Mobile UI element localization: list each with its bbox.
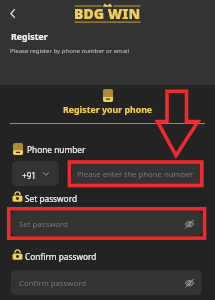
staticText: Register xyxy=(11,31,48,43)
button[interactable]: Show password xyxy=(182,216,197,231)
button[interactable]: Please enter the phone number xyxy=(72,161,201,186)
staticText: +91 xyxy=(22,170,37,181)
button[interactable]: Set password xyxy=(11,211,202,236)
staticText: Phone number xyxy=(27,144,86,155)
button[interactable]: Back xyxy=(0,1,24,25)
staticText: Please register by phone number or email xyxy=(10,47,130,55)
staticText: Set password xyxy=(19,219,68,230)
button[interactable]: Confirm password xyxy=(11,270,202,295)
staticText: BDG WIN xyxy=(74,4,141,23)
button[interactable]: Show password xyxy=(182,275,197,290)
staticText: Register your phone xyxy=(63,104,153,116)
button[interactable]: +91 xyxy=(12,161,59,186)
staticText: Confirm password xyxy=(25,251,97,262)
staticText: Set password xyxy=(25,193,77,204)
button[interactable]: Register your phone xyxy=(0,87,215,116)
staticText: Confirm password xyxy=(19,278,87,289)
staticText: Please enter the phone number xyxy=(77,169,194,180)
